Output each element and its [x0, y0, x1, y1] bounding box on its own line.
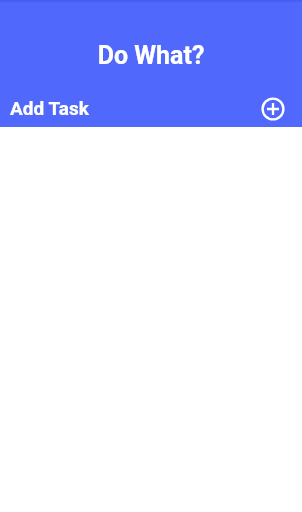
staticText: Add Task — [10, 97, 89, 119]
button[interactable]: Add task — [259, 95, 287, 123]
button[interactable]: Add Task — [0, 84, 302, 127]
staticText: Do What? — [0, 41, 302, 70]
